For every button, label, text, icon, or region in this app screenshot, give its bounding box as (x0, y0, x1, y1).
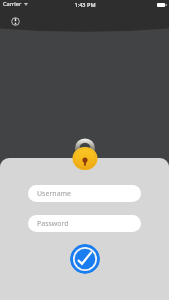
staticText: 1:43 PM (74, 1, 96, 9)
button[interactable]: Information (7, 13, 24, 30)
button[interactable]: Username (28, 185, 141, 202)
button[interactable]: Password (28, 215, 141, 232)
staticText: Carrier (3, 0, 22, 8)
button[interactable]: Sign in (70, 244, 100, 274)
staticText: Password (37, 219, 69, 229)
staticText: Username (37, 189, 72, 199)
